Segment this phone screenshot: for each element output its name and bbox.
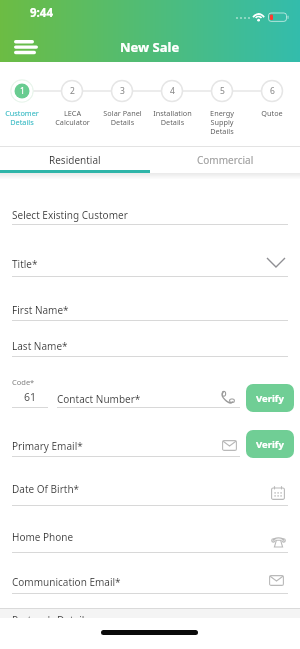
staticText: 1 [20, 85, 25, 97]
staticText: Select Existing Customer [12, 208, 128, 222]
staticText: 3 [120, 85, 125, 97]
button[interactable]: 3 [111, 80, 133, 102]
staticText: Qutoe [261, 108, 283, 118]
button[interactable] [8, 34, 44, 60]
button[interactable]: Verify [246, 384, 294, 412]
staticText: Primary Email* [12, 439, 83, 453]
staticText: First Name* [12, 303, 69, 317]
staticText: Home Phone [12, 530, 74, 544]
staticText: Code* [12, 377, 35, 387]
staticText: Contact Number* [57, 392, 141, 406]
button[interactable]: 5 [211, 80, 233, 102]
staticText: 61 [24, 390, 37, 404]
staticText: 2 [70, 85, 75, 97]
staticText: Commercial [197, 153, 254, 167]
button[interactable]: 1 [11, 80, 33, 102]
button[interactable] [0, 200, 300, 230]
button[interactable]: Verify [246, 430, 294, 458]
staticText: Title* [12, 257, 38, 271]
staticText: Last Name* [12, 339, 68, 353]
staticText: LECA Calculator [55, 108, 90, 127]
button[interactable]: 6 [261, 80, 283, 102]
staticText: Partner's Details [12, 613, 90, 618]
staticText: Customer Details [5, 108, 39, 127]
staticText: Solar Panel Details [103, 108, 142, 127]
staticText: 9:44 [30, 5, 53, 21]
staticText: Date Of Birth* [12, 482, 80, 496]
button[interactable]: Commercial [150, 146, 300, 173]
button[interactable]: Residential [0, 146, 150, 173]
staticText: Energy Supply Details [210, 108, 234, 136]
staticText: Verify [256, 392, 284, 405]
staticText: 6 [270, 85, 275, 97]
staticText: Verify [256, 438, 284, 451]
staticText: 5 [220, 85, 225, 97]
button[interactable] [0, 248, 300, 278]
staticText: New Sale [120, 38, 180, 56]
staticText: 4 [170, 85, 175, 97]
button[interactable]: 4 [161, 80, 183, 102]
staticText: Residential [49, 153, 101, 167]
button[interactable]: 2 [61, 80, 83, 102]
staticText: Communication Email* [12, 575, 121, 589]
staticText: Installation Details [153, 108, 192, 127]
